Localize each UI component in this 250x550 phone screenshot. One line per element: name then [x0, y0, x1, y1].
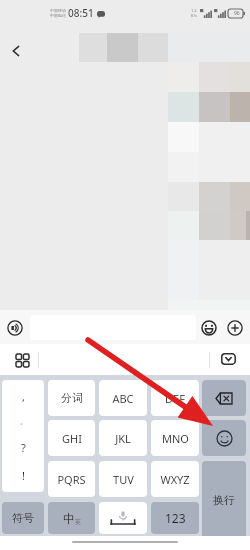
button[interactable]: MNO — [151, 420, 199, 456]
button[interactable]: TUV — [99, 461, 147, 497]
staticText: GHI — [62, 431, 82, 446]
staticText: MNO — [162, 431, 189, 446]
staticText: 96 — [234, 10, 240, 17]
button[interactable]: 123 — [151, 502, 199, 534]
button[interactable]: JKL — [99, 420, 147, 456]
staticText: 1.2 — [191, 8, 197, 13]
staticText: WXYZ — [160, 472, 190, 487]
button[interactable]: WXYZ — [151, 461, 199, 497]
button[interactable]: Voice input — [6, 319, 24, 337]
button[interactable]: Keyboard apps — [12, 350, 32, 370]
staticText: 中 — [63, 511, 75, 526]
button[interactable]: GHI — [48, 420, 95, 456]
staticText: DEF — [165, 391, 185, 406]
button[interactable]: 换行 — [202, 461, 246, 538]
staticText: , — [22, 389, 25, 404]
button[interactable]: DEF — [151, 380, 199, 416]
staticText: TUV — [113, 472, 134, 487]
staticText: 。 — [20, 417, 27, 426]
button[interactable]: More — [226, 319, 244, 337]
staticText: 符号 — [12, 511, 34, 525]
button[interactable]: , — [2, 380, 44, 492]
staticText: 分词 — [61, 391, 83, 405]
staticText: 中国移动 — [50, 8, 66, 13]
button[interactable]: Back — [4, 39, 28, 63]
staticText: K/s — [191, 13, 197, 18]
button[interactable]: ABC — [99, 380, 147, 416]
button[interactable]: Backspace — [202, 380, 246, 416]
staticText: 中国电信 — [50, 13, 66, 18]
staticText: 123 — [165, 510, 186, 526]
staticText: ABC — [112, 391, 134, 406]
button[interactable]: 分词 — [48, 380, 95, 416]
staticText: ! — [22, 468, 25, 483]
button[interactable]: Emoji — [202, 420, 246, 456]
staticText: JKL — [115, 431, 131, 446]
button[interactable]: Space / voice input — [99, 502, 147, 534]
staticText: ? — [21, 440, 26, 455]
staticText: PQRS — [57, 472, 86, 487]
button[interactable]: 中 — [48, 502, 95, 534]
button[interactable]: Hide keyboard — [218, 349, 238, 369]
button[interactable]: 符号 — [2, 502, 44, 534]
button[interactable] — [30, 315, 196, 340]
staticText: 英 — [75, 518, 81, 526]
staticText: 08:51 — [68, 6, 94, 20]
button[interactable]: Emoji — [200, 319, 218, 337]
button[interactable]: PQRS — [48, 461, 95, 497]
staticText: 换行 — [213, 493, 235, 507]
